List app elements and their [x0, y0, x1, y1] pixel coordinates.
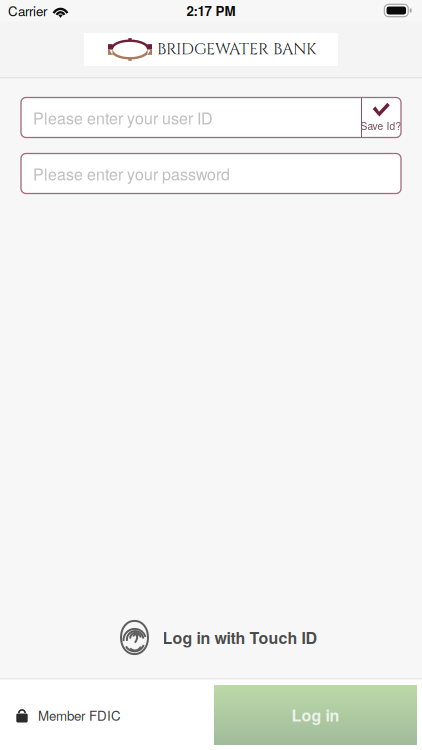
staticText: Please enter your password: [33, 162, 230, 185]
button[interactable]: Please enter your user ID: [21, 97, 361, 137]
staticText: Log in with Touch ID: [162, 626, 317, 649]
button[interactable]: Log in with Touch ID: [0, 609, 422, 665]
staticText: Save Id?: [360, 118, 401, 133]
button[interactable]: Save ID: [361, 97, 401, 137]
staticText: Please enter your user ID: [33, 106, 213, 129]
staticText: 2:17 PM: [186, 1, 235, 20]
button[interactable]: Log in: [214, 685, 417, 745]
staticText: Log in: [291, 703, 339, 726]
staticText: BRIDGEWATER BANK: [157, 39, 317, 60]
staticText: Carrier: [8, 1, 47, 20]
button[interactable]: Member FDIC: [0, 679, 214, 750]
staticText: Member FDIC: [38, 705, 121, 725]
button[interactable]: Please enter your password: [21, 153, 401, 193]
